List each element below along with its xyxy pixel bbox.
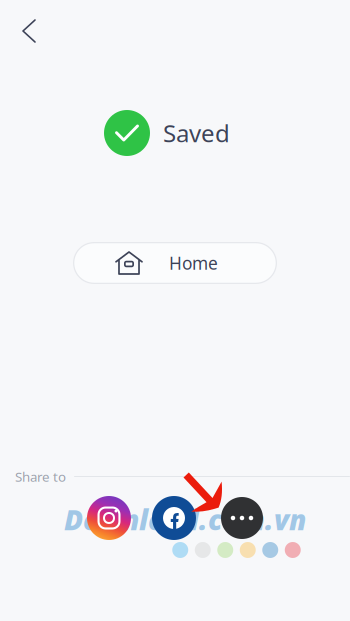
staticText: Download.com.vn bbox=[64, 501, 306, 538]
button[interactable]: More share options bbox=[221, 497, 263, 539]
button[interactable]: Share to Facebook bbox=[152, 496, 196, 540]
staticText: Home bbox=[169, 251, 218, 274]
button[interactable]: Share to Instagram bbox=[87, 496, 131, 540]
button[interactable]: Back bbox=[0, 0, 51, 58]
staticText: Saved bbox=[163, 117, 230, 149]
button[interactable]: Home bbox=[73, 242, 277, 284]
staticText: Share to bbox=[15, 468, 66, 485]
